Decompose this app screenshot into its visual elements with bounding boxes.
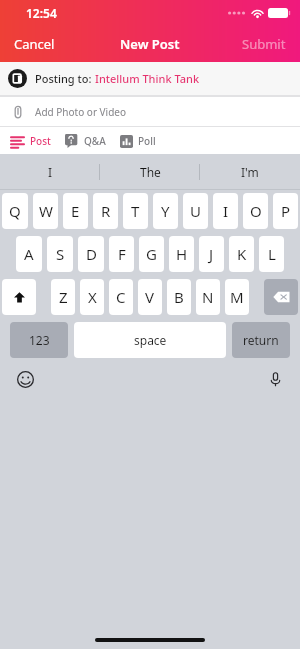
button[interactable]: I'm <box>200 154 300 190</box>
button[interactable]: Dictation <box>262 366 288 392</box>
button[interactable]: D <box>78 236 104 272</box>
button[interactable]: Add Photo or Video <box>0 97 300 126</box>
staticText: U <box>190 201 201 221</box>
button[interactable]: Cancel <box>0 29 69 59</box>
button[interactable]: T <box>123 193 148 229</box>
staticText: V <box>145 287 155 307</box>
staticText: C <box>116 287 126 307</box>
staticText: New Post <box>120 35 180 53</box>
staticText: Post <box>30 134 51 148</box>
staticText: N <box>202 287 214 307</box>
button[interactable]: N <box>196 279 220 315</box>
button[interactable]: L <box>259 236 284 272</box>
staticText: The <box>140 164 161 180</box>
button[interactable]: X <box>80 279 104 315</box>
button[interactable]: H <box>169 236 194 272</box>
staticText: R <box>101 201 111 221</box>
button[interactable]: E <box>63 193 88 229</box>
staticText: return <box>243 332 279 348</box>
button[interactable]: Shift <box>2 279 36 315</box>
button[interactable]: G <box>139 236 164 272</box>
button[interactable]: Backspace <box>264 279 298 315</box>
staticText: P <box>281 201 291 221</box>
staticText: E <box>71 201 80 221</box>
button[interactable]: Q <box>2 193 28 229</box>
button[interactable]: O <box>243 193 268 229</box>
staticText: O <box>250 201 262 221</box>
button[interactable]: M <box>225 279 249 315</box>
button[interactable]: F <box>109 236 134 272</box>
button[interactable]: V <box>138 279 162 315</box>
staticText: F <box>118 244 126 264</box>
staticText: Posting to: <box>35 71 95 86</box>
staticText: W <box>39 201 53 221</box>
staticText: S <box>56 244 65 264</box>
staticText: 12:54 <box>26 5 57 21</box>
staticText: I'm <box>241 164 259 180</box>
button[interactable]: I <box>0 154 100 190</box>
button[interactable]: Q&A <box>61 131 110 151</box>
staticText: Y <box>161 201 170 221</box>
button[interactable]: Poll <box>116 131 160 151</box>
button[interactable]: A <box>16 236 42 272</box>
staticText: X <box>88 287 97 307</box>
button[interactable]: The <box>100 154 200 190</box>
staticText: T <box>131 201 140 221</box>
button[interactable]: C <box>109 279 133 315</box>
button[interactable]: return <box>232 322 290 358</box>
staticText: Z <box>59 287 68 307</box>
staticText: K <box>237 244 247 264</box>
button[interactable]: Emoji <box>12 366 38 392</box>
staticText: Q&A <box>84 134 106 148</box>
button[interactable]: B <box>167 279 191 315</box>
staticText: I <box>223 201 229 221</box>
button[interactable]: W <box>33 193 58 229</box>
button[interactable]: space <box>74 322 226 358</box>
staticText: D <box>86 244 97 264</box>
staticText: H <box>176 244 188 264</box>
button[interactable]: Submit <box>228 29 300 59</box>
staticText: space <box>134 332 167 348</box>
button[interactable]: R <box>93 193 118 229</box>
staticText: L <box>268 244 276 264</box>
staticText: I <box>48 164 53 180</box>
button[interactable]: Y <box>153 193 178 229</box>
staticText: Add Photo or Video <box>35 105 127 119</box>
staticText: Cancel <box>14 35 55 53</box>
staticText: Submit <box>242 35 286 53</box>
staticText: Q <box>9 201 21 221</box>
staticText: A <box>24 244 34 264</box>
button[interactable]: 123 <box>10 322 68 358</box>
button[interactable]: Z <box>51 279 75 315</box>
staticText: Intellum Think Tank <box>95 71 200 86</box>
staticText: J <box>209 244 214 264</box>
staticText: B <box>174 287 184 307</box>
button[interactable]: U <box>183 193 208 229</box>
button[interactable]: Post <box>6 131 55 151</box>
button[interactable]: P <box>273 193 298 229</box>
button[interactable]: S <box>47 236 73 272</box>
button[interactable]: Posting to: <box>0 62 300 95</box>
button[interactable]: J <box>199 236 224 272</box>
staticText: 123 <box>29 332 50 348</box>
staticText: G <box>146 244 157 264</box>
staticText: Poll <box>138 134 156 148</box>
button[interactable]: K <box>229 236 254 272</box>
button[interactable]: I <box>213 193 238 229</box>
staticText: M <box>230 287 244 307</box>
